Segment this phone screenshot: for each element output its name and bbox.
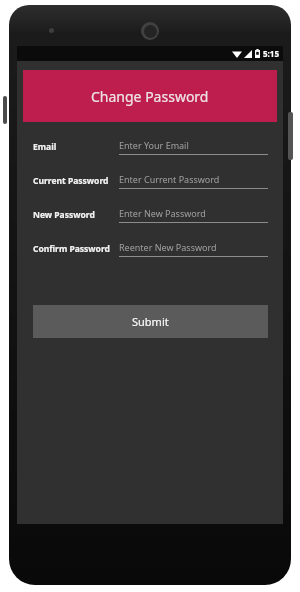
- staticText: New Password: [33, 209, 95, 221]
- staticText: Reenter New Password: [119, 241, 217, 253]
- staticText: Email: [33, 141, 57, 153]
- staticText: Change Password: [91, 87, 209, 106]
- staticText: Current Password: [33, 175, 109, 187]
- button[interactable]: Submit: [33, 305, 268, 338]
- button[interactable]: New Password: [17, 204, 283, 226]
- button[interactable]: Current Password: [17, 170, 283, 192]
- staticText: Enter New Password: [119, 207, 206, 219]
- other: Battery: [255, 49, 260, 58]
- staticText: Confirm Password: [33, 243, 110, 255]
- button[interactable]: Confirm Password: [17, 238, 283, 260]
- staticText: 5:15: [263, 48, 279, 59]
- staticText: Enter Current Password: [119, 173, 220, 185]
- staticText: Enter Your Email: [119, 139, 189, 151]
- staticText: Submit: [132, 314, 169, 329]
- button[interactable]: Change Password: [23, 70, 277, 122]
- other: Cellular signal: [244, 50, 252, 58]
- button[interactable]: Email: [17, 136, 283, 158]
- other: Wi-Fi signal: [232, 50, 242, 58]
